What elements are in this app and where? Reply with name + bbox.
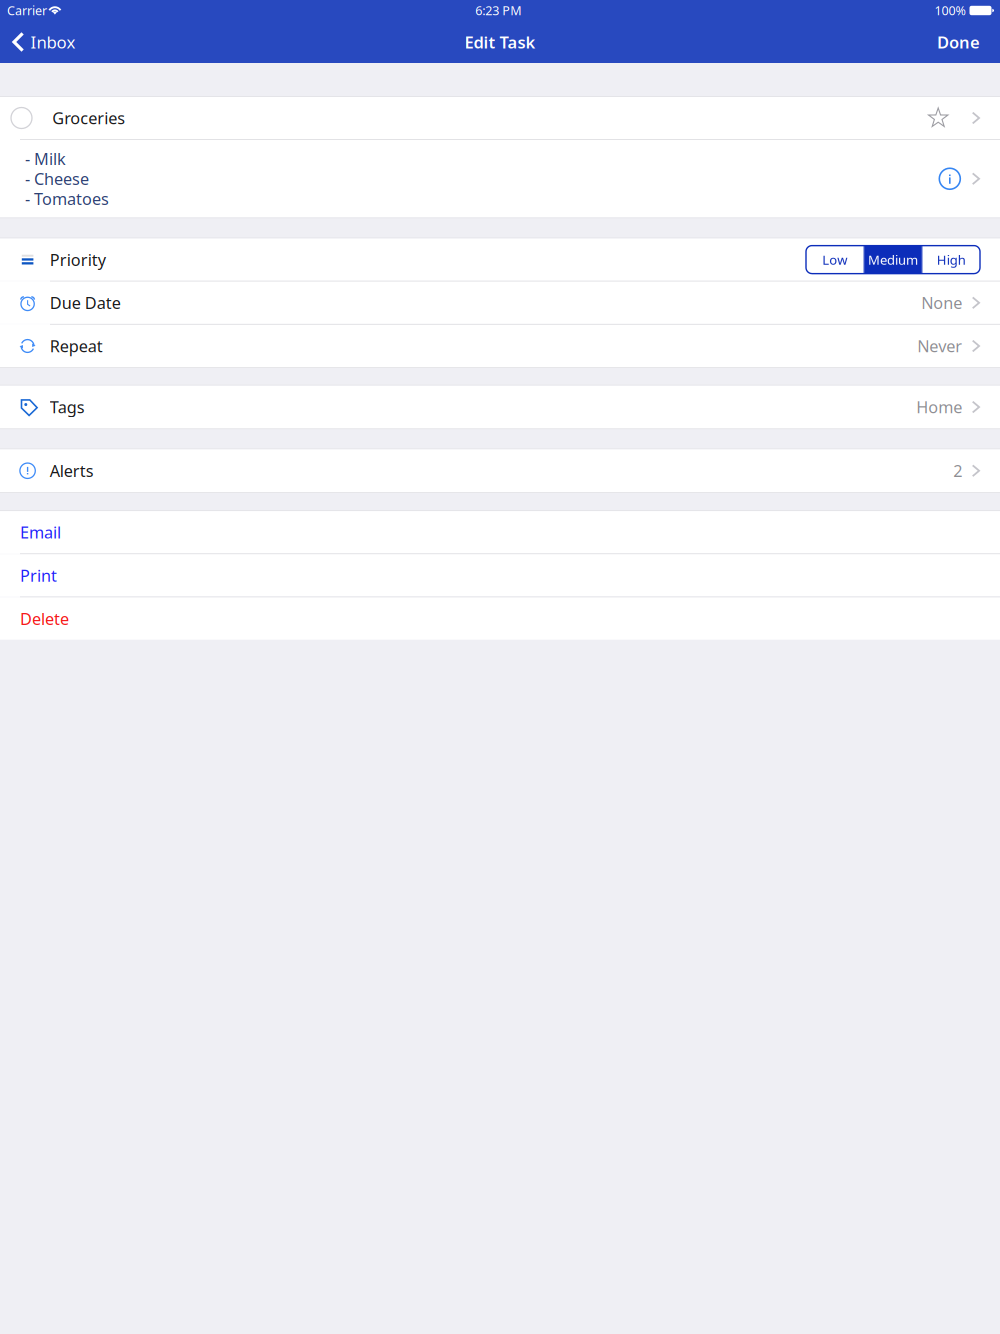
staticText: None	[921, 292, 962, 314]
button[interactable]: Medium	[865, 246, 921, 274]
staticText: - Tomatoes	[25, 188, 109, 210]
button[interactable]: Tags	[0, 386, 1000, 428]
button[interactable]: Repeat	[0, 325, 1000, 367]
button[interactable]: Low	[806, 246, 864, 274]
button[interactable]: Priority	[0, 238, 1000, 281]
button[interactable]: Due Date	[0, 282, 1000, 324]
staticText: High	[937, 251, 966, 268]
staticText: Groceries	[52, 107, 125, 129]
staticText: 6:23 PM	[475, 2, 521, 19]
staticText: Repeat	[50, 335, 103, 357]
staticText: - Milk	[25, 148, 66, 170]
staticText: Done	[937, 31, 980, 53]
staticText: Never	[917, 335, 962, 357]
staticText: Priority	[50, 248, 106, 271]
staticText: Alerts	[50, 460, 94, 482]
button[interactable]: Inbox	[0, 25, 76, 59]
button[interactable]: Delete	[0, 597, 1000, 640]
staticText: Medium	[868, 251, 918, 268]
button[interactable]: Done	[937, 25, 1000, 59]
staticText: Carrier	[7, 2, 47, 19]
button[interactable]: - Milk	[0, 140, 1000, 217]
staticText: - Cheese	[25, 168, 89, 190]
staticText: Print	[20, 564, 57, 586]
staticText: Tags	[50, 396, 85, 418]
staticText: Low	[822, 251, 847, 268]
staticText: Delete	[20, 607, 69, 630]
staticText: 100%	[934, 2, 965, 19]
staticText: 2	[953, 460, 962, 482]
staticText: Inbox	[31, 31, 76, 53]
staticText: Edit Task	[464, 31, 535, 53]
button[interactable]: Alerts	[0, 449, 1000, 492]
button[interactable]: Email	[0, 511, 1000, 553]
staticText: Due Date	[50, 292, 121, 314]
button[interactable]: Print	[0, 554, 1000, 596]
staticText: Home	[916, 396, 962, 418]
staticText: Email	[20, 521, 61, 543]
button[interactable]: Groceries	[0, 97, 1000, 139]
button[interactable]: High	[922, 246, 980, 274]
